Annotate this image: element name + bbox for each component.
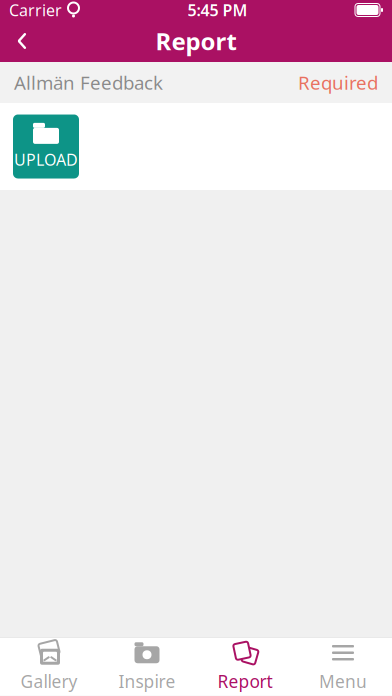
button[interactable]: Report [196,638,294,696]
staticText: 5:45 PM [187,0,247,21]
button[interactable]: UPLOAD [13,114,79,178]
button[interactable]: Inspire [98,638,196,696]
button[interactable]: Gallery [0,638,98,696]
staticText: Report [155,25,236,57]
button[interactable]: Back [0,20,44,62]
staticText: Menu [319,670,367,693]
staticText: Gallery [20,670,77,693]
staticText: Report [217,670,272,693]
staticText: Carrier [9,0,62,21]
button[interactable]: Menu [294,638,392,696]
staticText: UPLOAD [14,149,78,170]
staticText: Inspire [118,670,175,693]
staticText: Allmän Feedback [14,70,163,95]
staticText: Required [298,70,378,95]
